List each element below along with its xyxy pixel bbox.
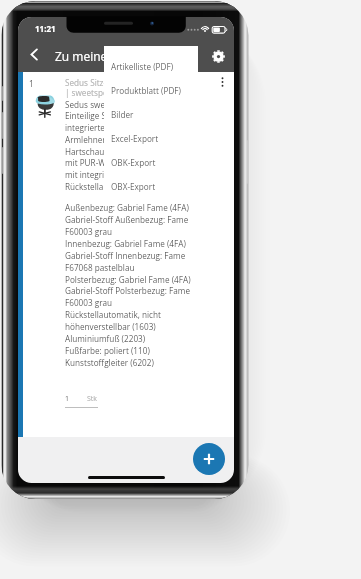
- staticText: Gabriel-Stoff Innenbezug: Fame: [65, 250, 186, 261]
- staticText: OBX-Export: [111, 181, 156, 192]
- staticText: Sedus sweetspot: [65, 99, 130, 110]
- staticText: mit integrierter: [65, 169, 123, 180]
- button[interactable]: Excel-Export: [104, 126, 198, 150]
- button[interactable]: Artikelliste (PDF): [104, 54, 198, 78]
- staticText: Polsterbezug: Gabriel Fame (4FA): [65, 274, 191, 285]
- staticText: Rückstellautomatik, nicht: [65, 309, 161, 320]
- staticText: Gabriel-Stoff Außenbezug: Fame: [65, 214, 189, 225]
- staticText: Produktblatt (PDF): [111, 85, 181, 96]
- staticText: Rückstellautomatik: [65, 181, 138, 192]
- button[interactable]: Einstellungen: [206, 44, 231, 69]
- button[interactable]: Zurück: [23, 43, 46, 66]
- staticText: Gabriel-Stoff Polsterbezug: Fame: [65, 285, 191, 296]
- staticText: F60003 grau: [65, 226, 113, 237]
- staticText: Armlehnenbereich,: [65, 134, 139, 145]
- staticText: Excel-Export: [111, 133, 159, 144]
- button[interactable]: OBK-Export: [104, 150, 198, 174]
- staticText: Aluminiumfuß (2203): [65, 333, 146, 344]
- staticText: F60003 grau: [65, 297, 113, 308]
- staticText: 1: [65, 394, 70, 404]
- staticText: Fußfarbe: poliert (110): [65, 345, 150, 356]
- staticText: F67068 pastelblau: [65, 262, 135, 273]
- button[interactable]: Bilder: [104, 102, 198, 126]
- staticText: Hartschaumpolsterung: [65, 146, 154, 157]
- staticText: Einteilige Sitzschale mit: [65, 110, 154, 121]
- staticText: Kunststoffgleiter (6202): [65, 357, 154, 368]
- staticText: integriertem Sitz- und: [65, 122, 148, 133]
- staticText: Stk: [87, 394, 98, 404]
- staticText: höhenverstellbar (1603): [65, 321, 156, 332]
- button[interactable]: Weitere Optionen: [212, 73, 232, 93]
- staticText: 11:21: [35, 23, 56, 34]
- button[interactable]: OBX-Export: [104, 174, 198, 198]
- button[interactable]: Artikel hinzufügen: [193, 443, 225, 475]
- staticText: Zu meinen Projekten: [55, 48, 172, 64]
- staticText: OBK-Export: [111, 157, 156, 168]
- staticText: | sweetspot: [65, 87, 111, 98]
- staticText: Sedus Sitz-: [65, 77, 107, 88]
- staticText: Artikelliste (PDF): [111, 61, 174, 72]
- staticText: Bilder: [111, 109, 134, 120]
- staticText: mit PUR-Weichschaum,: [65, 157, 154, 168]
- button[interactable]: Produktblatt (PDF): [104, 78, 198, 102]
- staticText: 1: [29, 78, 34, 89]
- staticText: Innenbezug: Gabriel Fame (4FA): [65, 238, 186, 249]
- staticText: Außenbezug: Gabriel Fame (4FA): [65, 202, 189, 213]
